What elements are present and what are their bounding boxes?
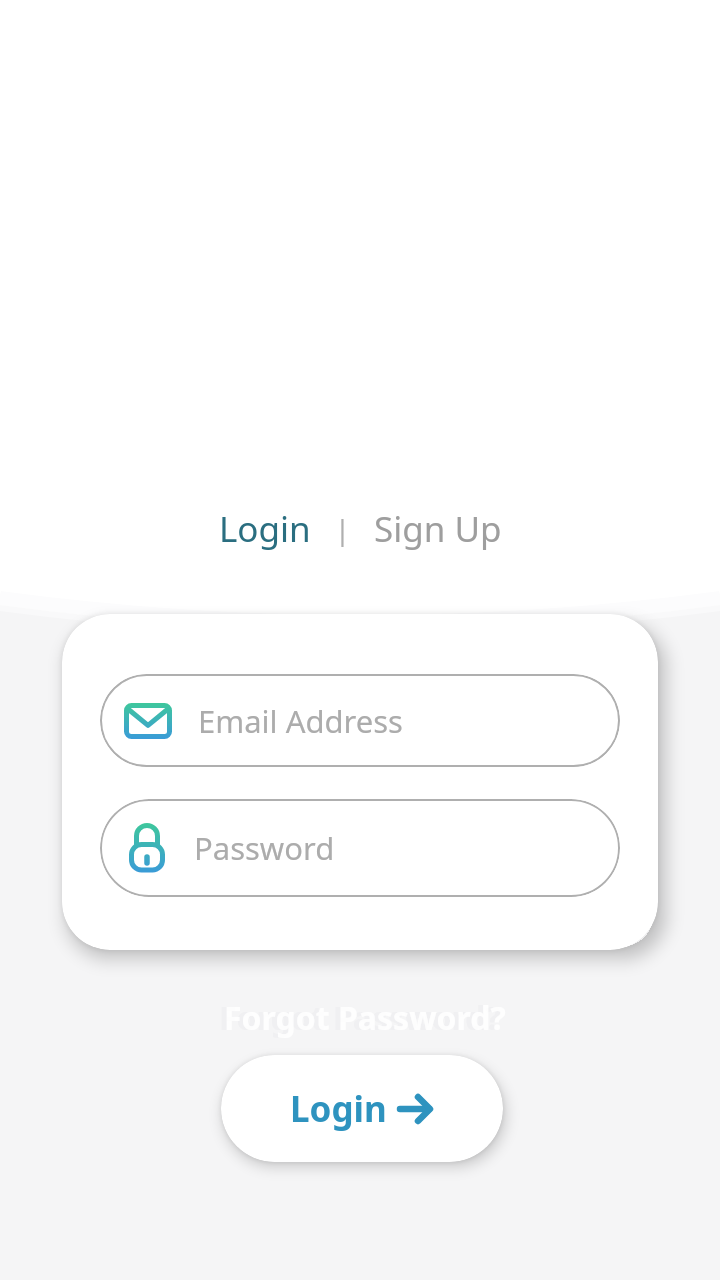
staticText: Login <box>290 1085 387 1133</box>
staticText: Forgot Password? <box>219 996 501 1040</box>
staticText: | <box>335 511 350 548</box>
button[interactable]: Sign Up <box>374 505 502 553</box>
button[interactable]: Login <box>221 1055 503 1162</box>
button[interactable]: Login <box>219 505 311 553</box>
button[interactable]: Email Address <box>100 674 620 767</box>
button[interactable]: Forgot Password? <box>219 996 501 1040</box>
staticText: Forgot Password? <box>224 996 506 1040</box>
staticText: Email Address <box>198 700 403 742</box>
button[interactable]: Password <box>100 799 620 897</box>
staticText: Password <box>194 827 335 869</box>
